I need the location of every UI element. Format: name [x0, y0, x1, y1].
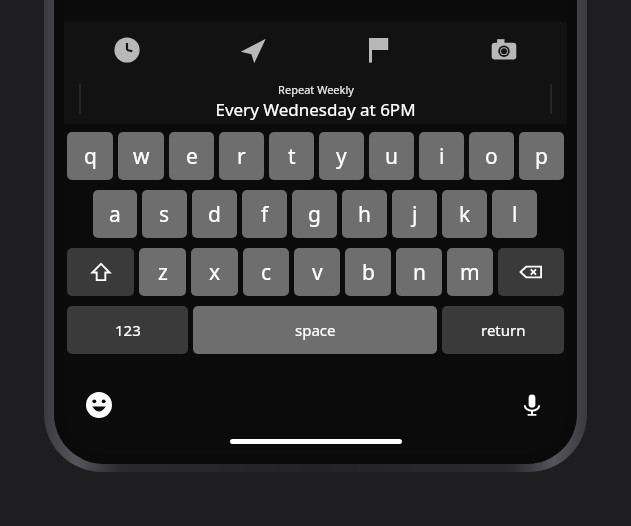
- staticText: u: [385, 142, 398, 171]
- button[interactable]: d: [192, 190, 237, 238]
- staticText: t: [288, 142, 296, 171]
- button[interactable]: a: [93, 190, 137, 238]
- staticText: c: [261, 258, 272, 287]
- staticText: z: [158, 258, 168, 287]
- button[interactable]: n: [396, 248, 442, 296]
- staticText: n: [413, 258, 426, 287]
- button[interactable]: Flag: [315, 22, 441, 78]
- staticText: Repeat Weekly: [278, 82, 354, 97]
- staticText: x: [209, 258, 221, 287]
- staticText: g: [308, 200, 321, 229]
- button[interactable]: l: [492, 190, 537, 238]
- button[interactable]: u: [369, 132, 414, 180]
- button[interactable]: s: [142, 190, 187, 238]
- staticText: y: [336, 142, 347, 171]
- button[interactable]: m: [447, 248, 493, 296]
- button[interactable]: Backspace: [498, 248, 564, 296]
- staticText: d: [208, 200, 221, 229]
- button[interactable]: c: [243, 248, 289, 296]
- button[interactable]: g: [292, 190, 337, 238]
- button[interactable]: i: [419, 132, 464, 180]
- staticText: q: [84, 142, 97, 171]
- button[interactable]: Repeat Weekly: [64, 78, 567, 124]
- button[interactable]: j: [392, 190, 437, 238]
- button[interactable]: space: [193, 306, 437, 354]
- staticText: a: [109, 200, 121, 229]
- staticText: 123: [115, 320, 141, 340]
- staticText: o: [485, 142, 498, 171]
- staticText: k: [459, 200, 471, 229]
- button[interactable]: e: [169, 132, 214, 180]
- staticText: l: [512, 200, 518, 229]
- staticText: h: [358, 200, 371, 229]
- staticText: m: [460, 258, 480, 287]
- button[interactable]: Camera: [441, 22, 567, 78]
- button[interactable]: Clock: [64, 22, 189, 78]
- staticText: i: [439, 142, 445, 171]
- staticText: Every Wednesday at 6PM: [215, 98, 416, 121]
- button[interactable]: Location: [189, 22, 315, 78]
- staticText: w: [133, 142, 150, 171]
- staticText: e: [186, 142, 198, 171]
- button[interactable]: 123: [67, 306, 188, 354]
- button[interactable]: z: [139, 248, 186, 296]
- button[interactable]: Dictation: [513, 386, 551, 424]
- button[interactable]: b: [345, 248, 391, 296]
- button[interactable]: f: [242, 190, 287, 238]
- button[interactable]: t: [269, 132, 314, 180]
- staticText: s: [159, 200, 170, 229]
- button[interactable]: p: [519, 132, 564, 180]
- staticText: b: [362, 258, 375, 287]
- staticText: j: [412, 200, 418, 229]
- button[interactable]: Emoji: [80, 386, 118, 424]
- button[interactable]: o: [469, 132, 514, 180]
- button[interactable]: q: [67, 132, 113, 180]
- button[interactable]: y: [319, 132, 364, 180]
- staticText: f: [261, 200, 269, 229]
- button[interactable]: k: [442, 190, 487, 238]
- button[interactable]: w: [118, 132, 164, 180]
- button[interactable]: x: [191, 248, 238, 296]
- staticText: v: [312, 258, 323, 287]
- button[interactable]: return: [442, 306, 564, 354]
- staticText: r: [237, 142, 246, 171]
- staticText: return: [481, 320, 526, 340]
- button[interactable]: v: [294, 248, 340, 296]
- button[interactable]: r: [219, 132, 264, 180]
- button[interactable]: h: [342, 190, 387, 238]
- staticText: space: [295, 320, 336, 340]
- staticText: p: [535, 142, 548, 171]
- button[interactable]: Shift: [67, 248, 134, 296]
